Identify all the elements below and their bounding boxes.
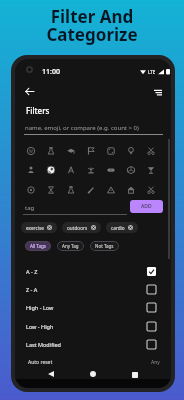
staticText: name, emoji, or compare (e.g. count > 0): [25, 124, 139, 132]
button[interactable]: Recents: [127, 367, 143, 383]
button[interactable]: Category 2: [42, 142, 60, 160]
staticText: tag: [25, 204, 35, 212]
button[interactable]: Category 13: [122, 161, 140, 179]
button[interactable]: Category 12: [102, 161, 120, 179]
button[interactable]: Category 8: [22, 161, 40, 179]
button[interactable]: Sort: [150, 84, 166, 100]
button[interactable]: Category 11: [82, 161, 100, 179]
staticText: outdoors: [67, 225, 88, 231]
staticText: Z - A: [26, 286, 38, 293]
staticText: LTE: [148, 69, 156, 75]
staticText: 11:00: [42, 67, 60, 77]
button[interactable]: Back: [21, 83, 37, 99]
button[interactable]: Category 1: [22, 142, 40, 160]
staticText: Any: [151, 359, 160, 366]
button[interactable]: Category 21: [142, 181, 160, 199]
button[interactable]: Category 20: [122, 181, 140, 199]
button[interactable]: Category 15: [22, 181, 40, 199]
button[interactable]: cardio: [106, 222, 138, 233]
staticText: All Tags: [30, 243, 46, 249]
staticText: High - Low: [26, 304, 54, 311]
staticText: Auto reset: [28, 359, 53, 366]
button[interactable]: Category 18: [82, 181, 100, 199]
button[interactable]: Category 16: [42, 181, 60, 199]
button[interactable]: Last Modified: [15, 335, 171, 353]
staticText: A - Z: [26, 268, 38, 275]
button[interactable]: Back: [43, 366, 59, 382]
button[interactable]: High - Low: [15, 298, 171, 316]
button[interactable]: Category 19: [102, 181, 120, 199]
button[interactable]: Any Tag: [57, 241, 84, 251]
button[interactable]: A - Z: [15, 262, 171, 280]
button[interactable]: Category 7: [142, 142, 160, 160]
button[interactable]: Low - High: [15, 317, 171, 335]
button[interactable]: Category 6: [122, 142, 140, 160]
staticText: cardio: [111, 225, 125, 231]
button[interactable]: All Tags: [25, 241, 51, 251]
button[interactable]: Category 4: [82, 142, 100, 160]
button[interactable]: Category 5: [102, 142, 120, 160]
button[interactable]: Home: [85, 366, 101, 382]
button[interactable]: ADD: [130, 200, 163, 213]
button[interactable]: Category 14: [142, 161, 160, 179]
staticText: Any Tag: [62, 243, 79, 249]
staticText: Last Modified: [26, 341, 61, 348]
staticText: Not Tags: [95, 243, 114, 249]
button[interactable]: Z - A: [15, 280, 171, 298]
staticText: ADD: [141, 203, 152, 210]
button[interactable]: exercise: [21, 222, 57, 233]
button[interactable]: Not Tags: [90, 241, 119, 251]
button[interactable]: Category 3: [62, 142, 80, 160]
staticText: exercise: [26, 225, 44, 231]
button[interactable]: outdoors: [62, 222, 101, 233]
staticText: Filters: [26, 105, 50, 116]
staticText: Low - High: [26, 323, 54, 330]
button[interactable]: Category 10: [62, 161, 80, 179]
staticText: Filter And Categorize: [0, 5, 184, 46]
button[interactable]: Category 17: [62, 181, 80, 199]
button[interactable]: Category 9: [42, 161, 60, 179]
